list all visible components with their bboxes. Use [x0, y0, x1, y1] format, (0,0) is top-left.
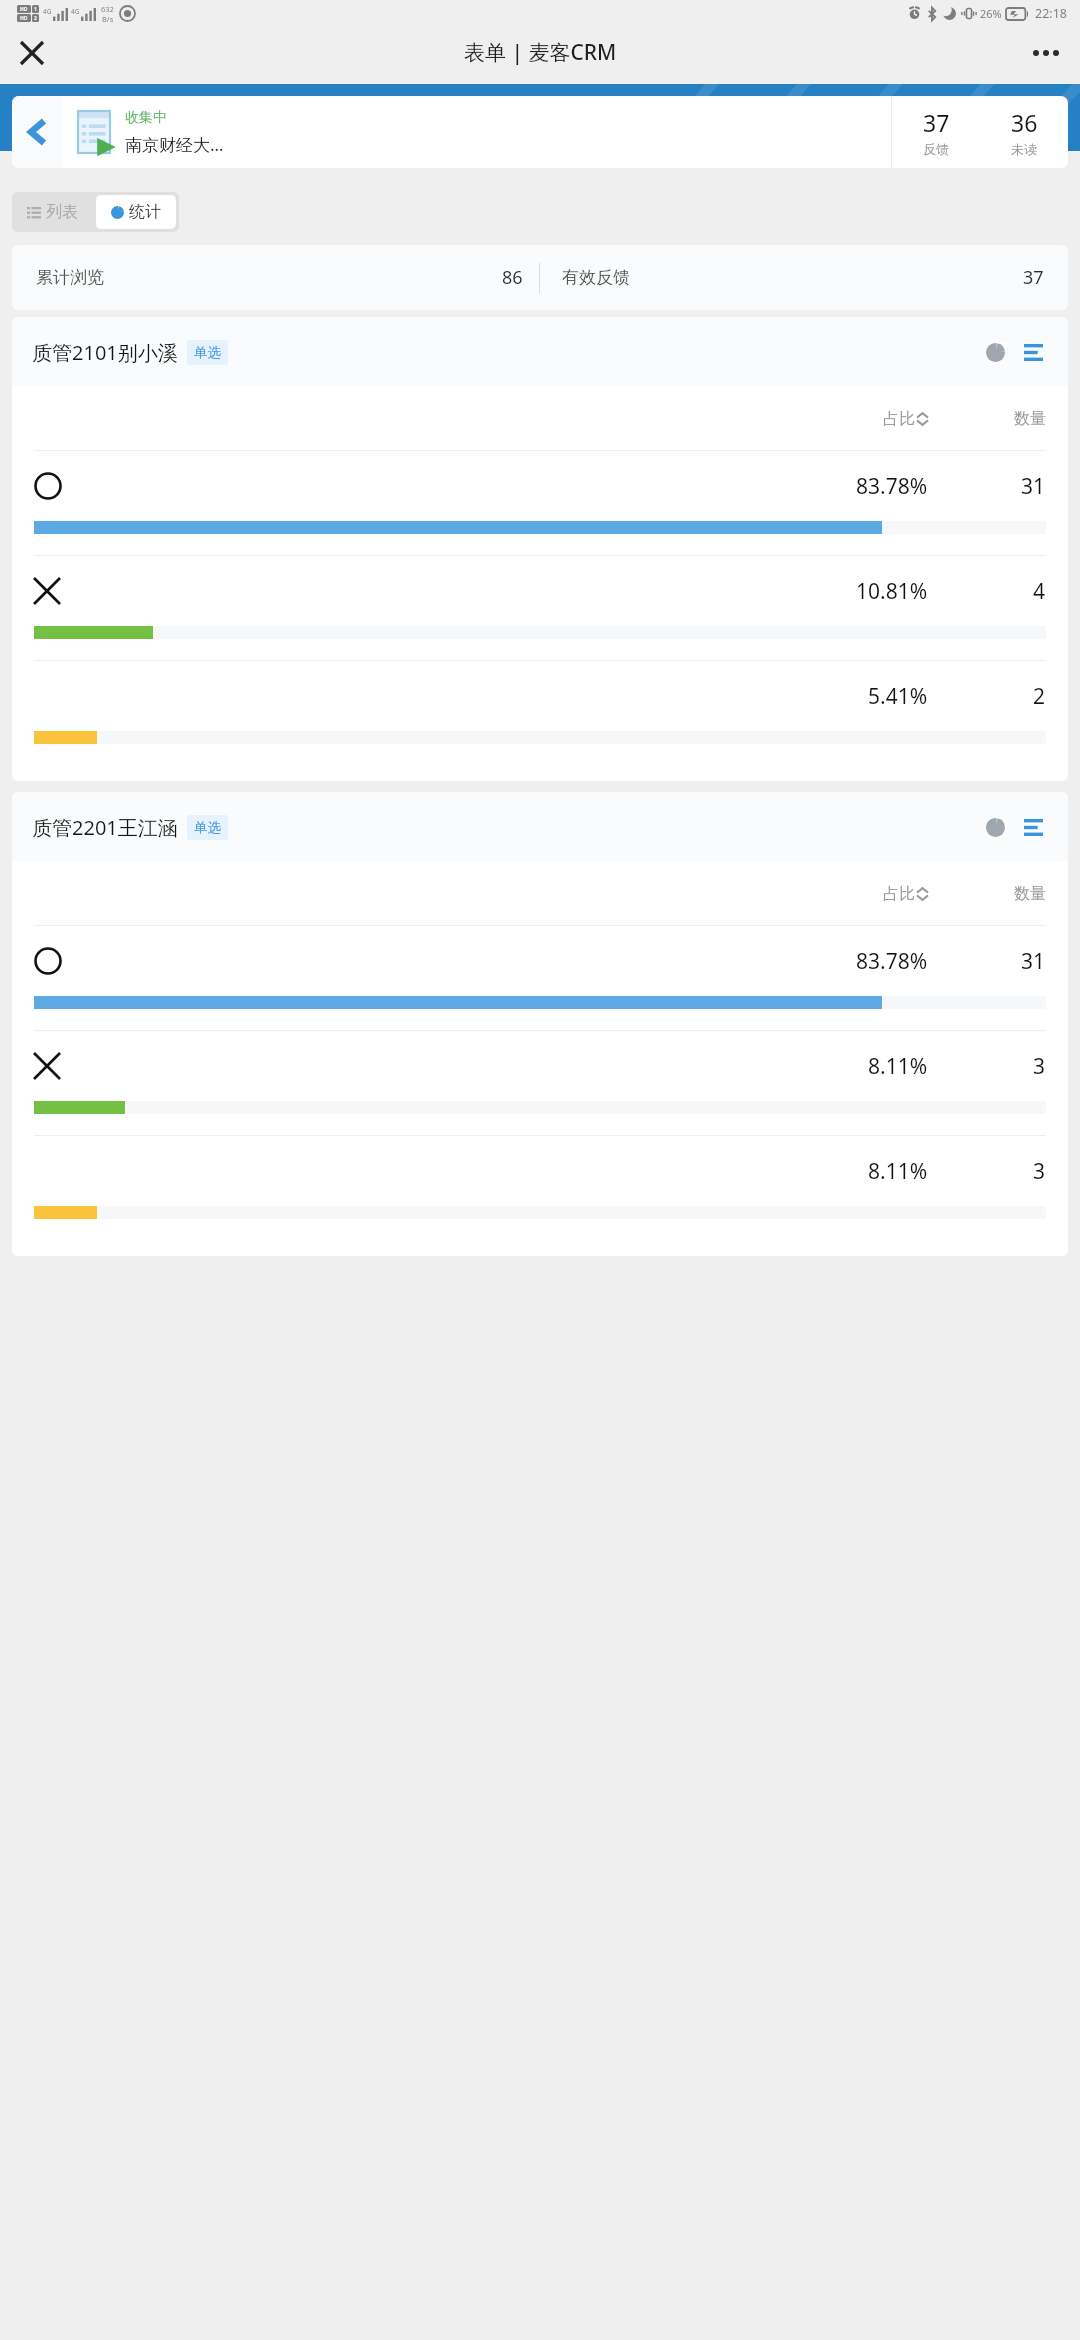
button[interactable]: 83.78%	[12, 926, 1068, 1030]
staticText: 统计	[129, 202, 161, 222]
staticText: 未读	[1011, 141, 1037, 157]
staticText: 26%	[980, 6, 1002, 21]
staticText: 86	[502, 265, 523, 290]
staticText: 累计浏览	[36, 267, 104, 288]
staticText: 2	[34, 15, 37, 22]
staticText: 单选	[194, 344, 221, 361]
staticText: 质管2201王江涵	[32, 814, 178, 841]
button[interactable]: Back	[12, 96, 63, 168]
staticText: 83.78%	[856, 472, 928, 501]
staticText: 列表	[46, 202, 78, 222]
staticText: 8.11%	[868, 1157, 928, 1186]
button[interactable]: 占比	[778, 409, 928, 429]
staticText: 31	[1021, 472, 1046, 501]
staticText: 占比	[883, 884, 915, 904]
staticText: 南京财经大…	[125, 133, 224, 156]
staticText: 质管2101别小溪	[32, 339, 178, 366]
staticText: 数量	[1014, 884, 1046, 904]
button[interactable]: 5.41%	[12, 661, 1068, 765]
staticText: 22:18	[1035, 5, 1067, 22]
staticText: 10.81%	[856, 577, 928, 606]
staticText: 4G	[71, 7, 80, 16]
button[interactable]: 质管2201王江涵	[32, 792, 1050, 862]
staticText: 1	[34, 6, 37, 13]
button[interactable]: 8.11%	[12, 1136, 1068, 1240]
button[interactable]: 37	[892, 96, 980, 168]
staticText: 31	[1021, 947, 1046, 976]
button[interactable]: Pie chart view	[978, 810, 1012, 844]
button[interactable]: Back	[12, 96, 1068, 168]
staticText: 632	[101, 4, 114, 14]
staticText: 37	[923, 107, 950, 138]
button[interactable]: Pie chart view	[978, 335, 1012, 369]
staticText: 37	[1023, 265, 1044, 290]
button[interactable]: Bar chart view	[1016, 810, 1050, 844]
button[interactable]: 累计浏览	[12, 245, 1068, 310]
button[interactable]: 统计	[96, 195, 176, 229]
staticText: HD	[20, 15, 28, 22]
button[interactable]: 质管2101别小溪	[32, 317, 1050, 387]
staticText: 4	[1033, 577, 1046, 606]
staticText: 收集中	[125, 109, 167, 127]
button[interactable]: 36	[980, 96, 1068, 168]
staticText: 数量	[1014, 409, 1046, 429]
button[interactable]: More options	[1022, 29, 1070, 77]
staticText: 表单 | 麦客CRM	[464, 38, 617, 67]
button[interactable]: Bar chart view	[1016, 335, 1050, 369]
staticText: 3	[1033, 1157, 1046, 1186]
staticText: 83.78%	[856, 947, 928, 976]
button[interactable]: Close	[8, 29, 56, 77]
button[interactable]: 列表	[12, 192, 93, 232]
button[interactable]: 占比	[778, 884, 928, 904]
staticText: 36	[1011, 107, 1038, 138]
button[interactable]: 83.78%	[12, 451, 1068, 555]
staticText: 8.11%	[868, 1052, 928, 1081]
staticText: 2	[1033, 682, 1046, 711]
staticText: 占比	[883, 409, 915, 429]
button[interactable]: 10.81%	[12, 556, 1068, 660]
staticText: 单选	[194, 819, 221, 836]
button[interactable]: 8.11%	[12, 1031, 1068, 1135]
staticText: 4G	[43, 7, 52, 16]
staticText: 3	[1033, 1052, 1046, 1081]
staticText: 反馈	[923, 141, 949, 157]
staticText: 5.41%	[868, 682, 928, 711]
staticText: 有效反馈	[562, 267, 630, 288]
staticText: HD	[20, 6, 28, 13]
staticText: B/s	[102, 14, 114, 24]
